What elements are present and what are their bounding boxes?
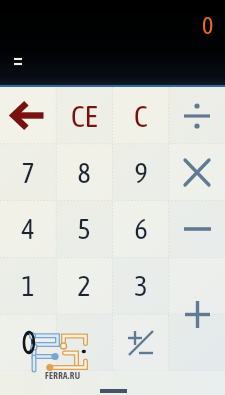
button[interactable]: 1 xyxy=(0,257,56,314)
button[interactable]: CE xyxy=(56,87,112,144)
staticText: 3 xyxy=(134,270,148,302)
staticText: 9 xyxy=(134,157,148,189)
button[interactable]: 5 xyxy=(56,200,112,257)
button[interactable]: Multiply xyxy=(169,144,225,201)
staticText: 1 xyxy=(21,270,35,302)
staticText: 4 xyxy=(21,213,35,245)
staticText: 7 xyxy=(21,157,35,189)
button[interactable]: Divide xyxy=(169,87,225,144)
button[interactable]: 4 xyxy=(0,200,56,257)
button[interactable]: Minus xyxy=(169,200,225,257)
button[interactable]: 6 xyxy=(113,200,169,257)
staticText: 2 xyxy=(77,270,91,302)
staticText: 8 xyxy=(77,157,91,189)
button[interactable]: 0 xyxy=(0,314,56,371)
staticText: 5 xyxy=(77,213,91,245)
staticText: . xyxy=(82,327,87,359)
staticText: C xyxy=(134,99,148,133)
staticText: 0 xyxy=(21,327,35,359)
button[interactable]: . xyxy=(56,314,112,371)
button[interactable]: C xyxy=(113,87,169,144)
button[interactable]: 3 xyxy=(113,257,169,314)
staticText: 0 xyxy=(202,12,214,40)
staticText: CE xyxy=(71,99,98,133)
staticText: FERRA.RU xyxy=(45,371,81,381)
button[interactable]: 7 xyxy=(0,144,56,201)
button[interactable]: Backspace xyxy=(0,87,56,144)
button[interactable]: Plus minus xyxy=(113,314,169,371)
button[interactable]: 8 xyxy=(56,144,112,201)
button[interactable]: Plus xyxy=(169,257,225,371)
staticText: 6 xyxy=(134,213,148,245)
button[interactable]: 2 xyxy=(56,257,112,314)
button[interactable]: 9 xyxy=(113,144,169,201)
